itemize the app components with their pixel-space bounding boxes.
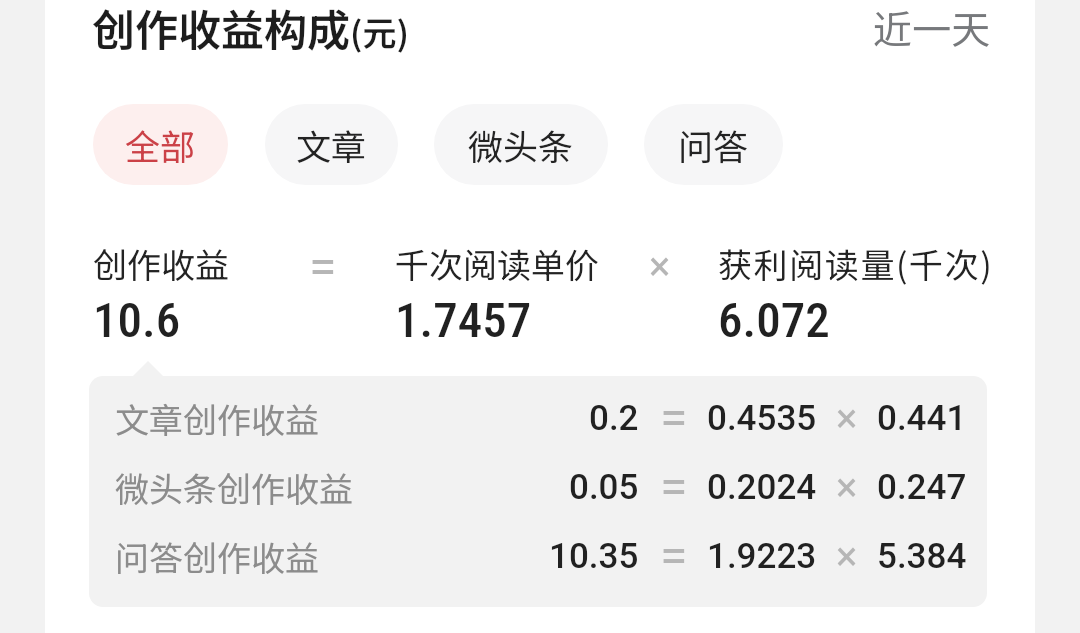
staticText: = — [660, 389, 688, 448]
button[interactable]: 近一天 — [863, 0, 1001, 67]
staticText: 微头条 — [468, 119, 574, 170]
button[interactable]: 千次阅读单价 — [395, 239, 599, 349]
staticText: 6.072 — [718, 292, 830, 349]
staticText: 0.2 — [589, 398, 639, 439]
staticText: 1.9223 — [707, 536, 817, 577]
staticText: = — [660, 527, 688, 586]
staticText: 文章创作收益 — [115, 394, 319, 443]
staticText: 10.6 — [93, 292, 181, 349]
staticText: = — [309, 238, 337, 297]
button[interactable]: 全部 — [93, 104, 228, 185]
button[interactable]: 创作收益构成 — [92, 0, 409, 58]
button[interactable]: 微头条创作收益 — [89, 453, 987, 522]
staticText: 0.441 — [877, 398, 967, 439]
staticText: = — [660, 458, 688, 517]
staticText: 10.35 — [549, 536, 639, 577]
button[interactable]: 获利阅读量(千次) — [718, 239, 994, 349]
staticText: 文章 — [296, 119, 367, 170]
staticText: 0.247 — [877, 467, 967, 508]
staticText: 0.2024 — [707, 467, 817, 508]
button[interactable]: 文章 — [265, 104, 398, 185]
staticText: 微头条创作收益 — [115, 463, 353, 512]
staticText: 创作收益 — [93, 239, 229, 288]
staticText: 5.384 — [877, 536, 967, 577]
staticText: 0.05 — [569, 467, 639, 508]
button[interactable]: 创作收益 — [93, 239, 229, 349]
staticText: 全部 — [125, 119, 196, 170]
staticText: 近一天 — [873, 0, 991, 55]
staticText: 问答 — [678, 119, 749, 170]
staticText: 创作收益构成 — [92, 0, 350, 58]
button[interactable]: 文章创作收益 — [89, 384, 987, 453]
button[interactable]: 问答 — [644, 104, 783, 185]
staticText: 0.4535 — [707, 398, 817, 439]
button[interactable]: 问答创作收益 — [89, 522, 987, 591]
staticText: × — [836, 533, 858, 580]
staticText: × — [649, 243, 671, 290]
button[interactable]: 微头条 — [434, 104, 608, 185]
staticText: × — [836, 395, 858, 442]
staticText: 1.7457 — [395, 292, 532, 349]
staticText: 获利阅读量(千次) — [718, 239, 994, 288]
staticText: × — [836, 464, 858, 511]
staticText: 问答创作收益 — [115, 532, 319, 581]
staticText: 千次阅读单价 — [395, 239, 599, 288]
staticText: (元) — [350, 7, 409, 56]
